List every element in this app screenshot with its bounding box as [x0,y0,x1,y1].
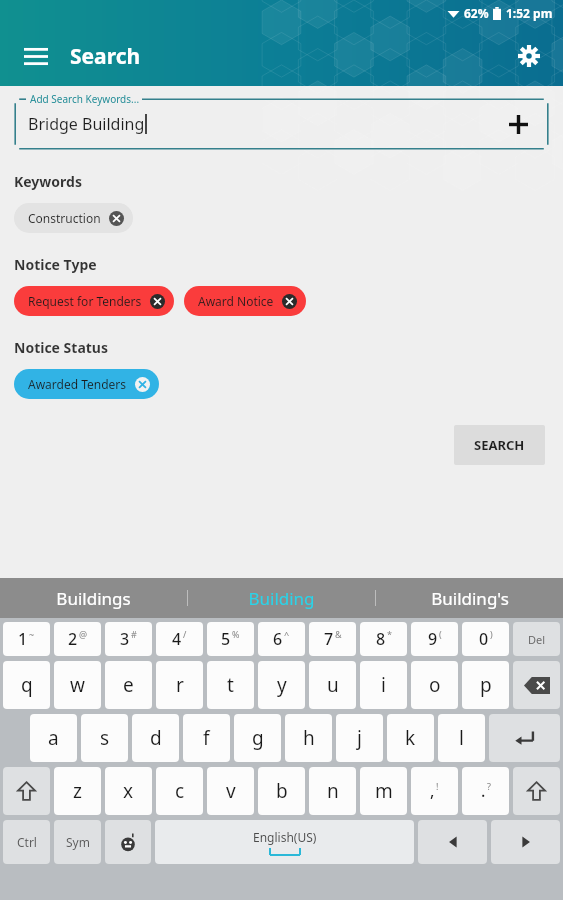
staticText: r [176,672,184,698]
staticText: . [481,780,486,802]
button[interactable]: 2 [54,622,101,656]
button[interactable]: 6 [258,622,305,656]
button[interactable]: Awarded Tenders [14,369,159,399]
staticText: % [232,628,240,640]
staticText: Building [248,587,315,610]
staticText: u [327,672,339,698]
button[interactable]: Shift [513,767,560,815]
staticText: Add Search Keywords... [30,92,140,106]
staticText: @ [79,628,88,640]
button[interactable]: 8 [360,622,407,656]
staticText: Ctrl [17,834,37,850]
staticText: 7 [324,628,334,650]
button[interactable]: SEARCH [454,425,545,465]
button[interactable]: g [234,714,281,762]
staticText: Construction [28,210,101,226]
staticText: 8 [376,628,386,650]
staticText: 62% [464,5,489,21]
staticText: Del [528,632,546,647]
button[interactable]: w [54,661,101,709]
button[interactable]: 4 [156,622,203,656]
staticText: e [123,672,134,698]
button[interactable]: Buildings [0,578,187,618]
button[interactable]: y [258,661,305,709]
button[interactable]: t [207,661,254,709]
button[interactable]: Del [513,622,560,656]
staticText: Buildings [56,587,131,610]
button[interactable]: i [360,661,407,709]
button[interactable]: Shift [3,767,50,815]
button[interactable]: Construction [14,203,133,233]
button[interactable]: v [207,767,254,815]
button[interactable]: Open navigation menu [14,34,58,78]
staticText: h [303,725,315,751]
button[interactable]: k [387,714,434,762]
button[interactable]: f [183,714,230,762]
staticText: z [73,778,82,804]
button[interactable]: a [30,714,77,762]
button[interactable]: Award Notice [184,286,306,316]
staticText: Award Notice [198,293,274,309]
staticText: , [430,780,435,802]
button[interactable]: , [411,767,458,815]
staticText: * [387,628,392,640]
staticText: 1:52 pm [506,5,553,21]
button[interactable]: Settings [507,34,551,78]
button[interactable]: l [438,714,485,762]
button[interactable]: Request for Tenders [14,286,174,316]
button[interactable]: z [54,767,101,815]
staticText: m [375,778,393,804]
staticText: n [327,778,339,804]
staticText: 0 [479,628,489,650]
button[interactable]: d [132,714,179,762]
button[interactable]: Move cursor left [418,820,487,864]
staticText: d [150,725,162,751]
staticText: Awarded Tenders [28,376,127,392]
button[interactable]: Ctrl [3,820,50,864]
button[interactable]: o [411,661,458,709]
button[interactable]: 5 [207,622,254,656]
staticText: a [48,725,59,751]
button[interactable]: . [462,767,509,815]
button[interactable]: 1 [3,622,50,656]
button[interactable]: Emoji [105,820,151,864]
button[interactable]: 7 [309,622,356,656]
button[interactable]: q [3,661,50,709]
staticText: o [429,672,441,698]
button[interactable]: u [309,661,356,709]
button[interactable]: s [81,714,128,762]
button[interactable]: e [105,661,152,709]
button[interactable]: r [156,661,203,709]
button[interactable]: Building [188,578,375,618]
button[interactable]: 0 [462,622,509,656]
button[interactable]: j [336,714,383,762]
button[interactable]: p [462,661,509,709]
button[interactable]: Move cursor right [491,820,560,864]
staticText: x [123,778,134,804]
button[interactable]: x [105,767,152,815]
staticText: 5 [221,628,231,650]
button[interactable]: m [360,767,407,815]
staticText: t [227,672,234,698]
button[interactable]: b [258,767,305,815]
button[interactable]: h [285,714,332,762]
button[interactable]: Building's [376,578,563,618]
staticText: s [100,725,110,751]
button[interactable]: n [309,767,356,815]
staticText: k [405,725,416,751]
staticText: 3 [120,628,130,650]
button[interactable]: 3 [105,622,152,656]
staticText: ^ [284,628,290,640]
button[interactable]: 9 [411,622,458,656]
staticText: i [381,672,386,698]
button[interactable]: English(US) [155,820,414,864]
button[interactable]: Backspace [513,661,560,709]
staticText: Bridge Building [28,113,145,135]
button[interactable]: Enter [489,714,560,762]
button[interactable]: Sym [54,820,101,864]
staticText: 4 [172,628,182,650]
staticText: q [21,672,33,698]
button[interactable]: c [156,767,203,815]
button[interactable]: Add keyword [501,107,535,141]
staticText: / [183,628,187,640]
